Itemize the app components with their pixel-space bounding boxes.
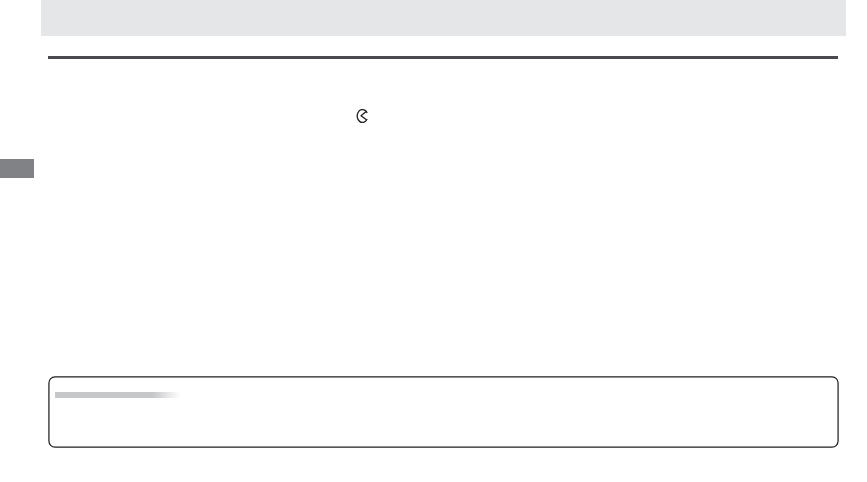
button[interactable] — [47, 375, 840, 449]
button[interactable]: Previous — [353, 106, 373, 126]
